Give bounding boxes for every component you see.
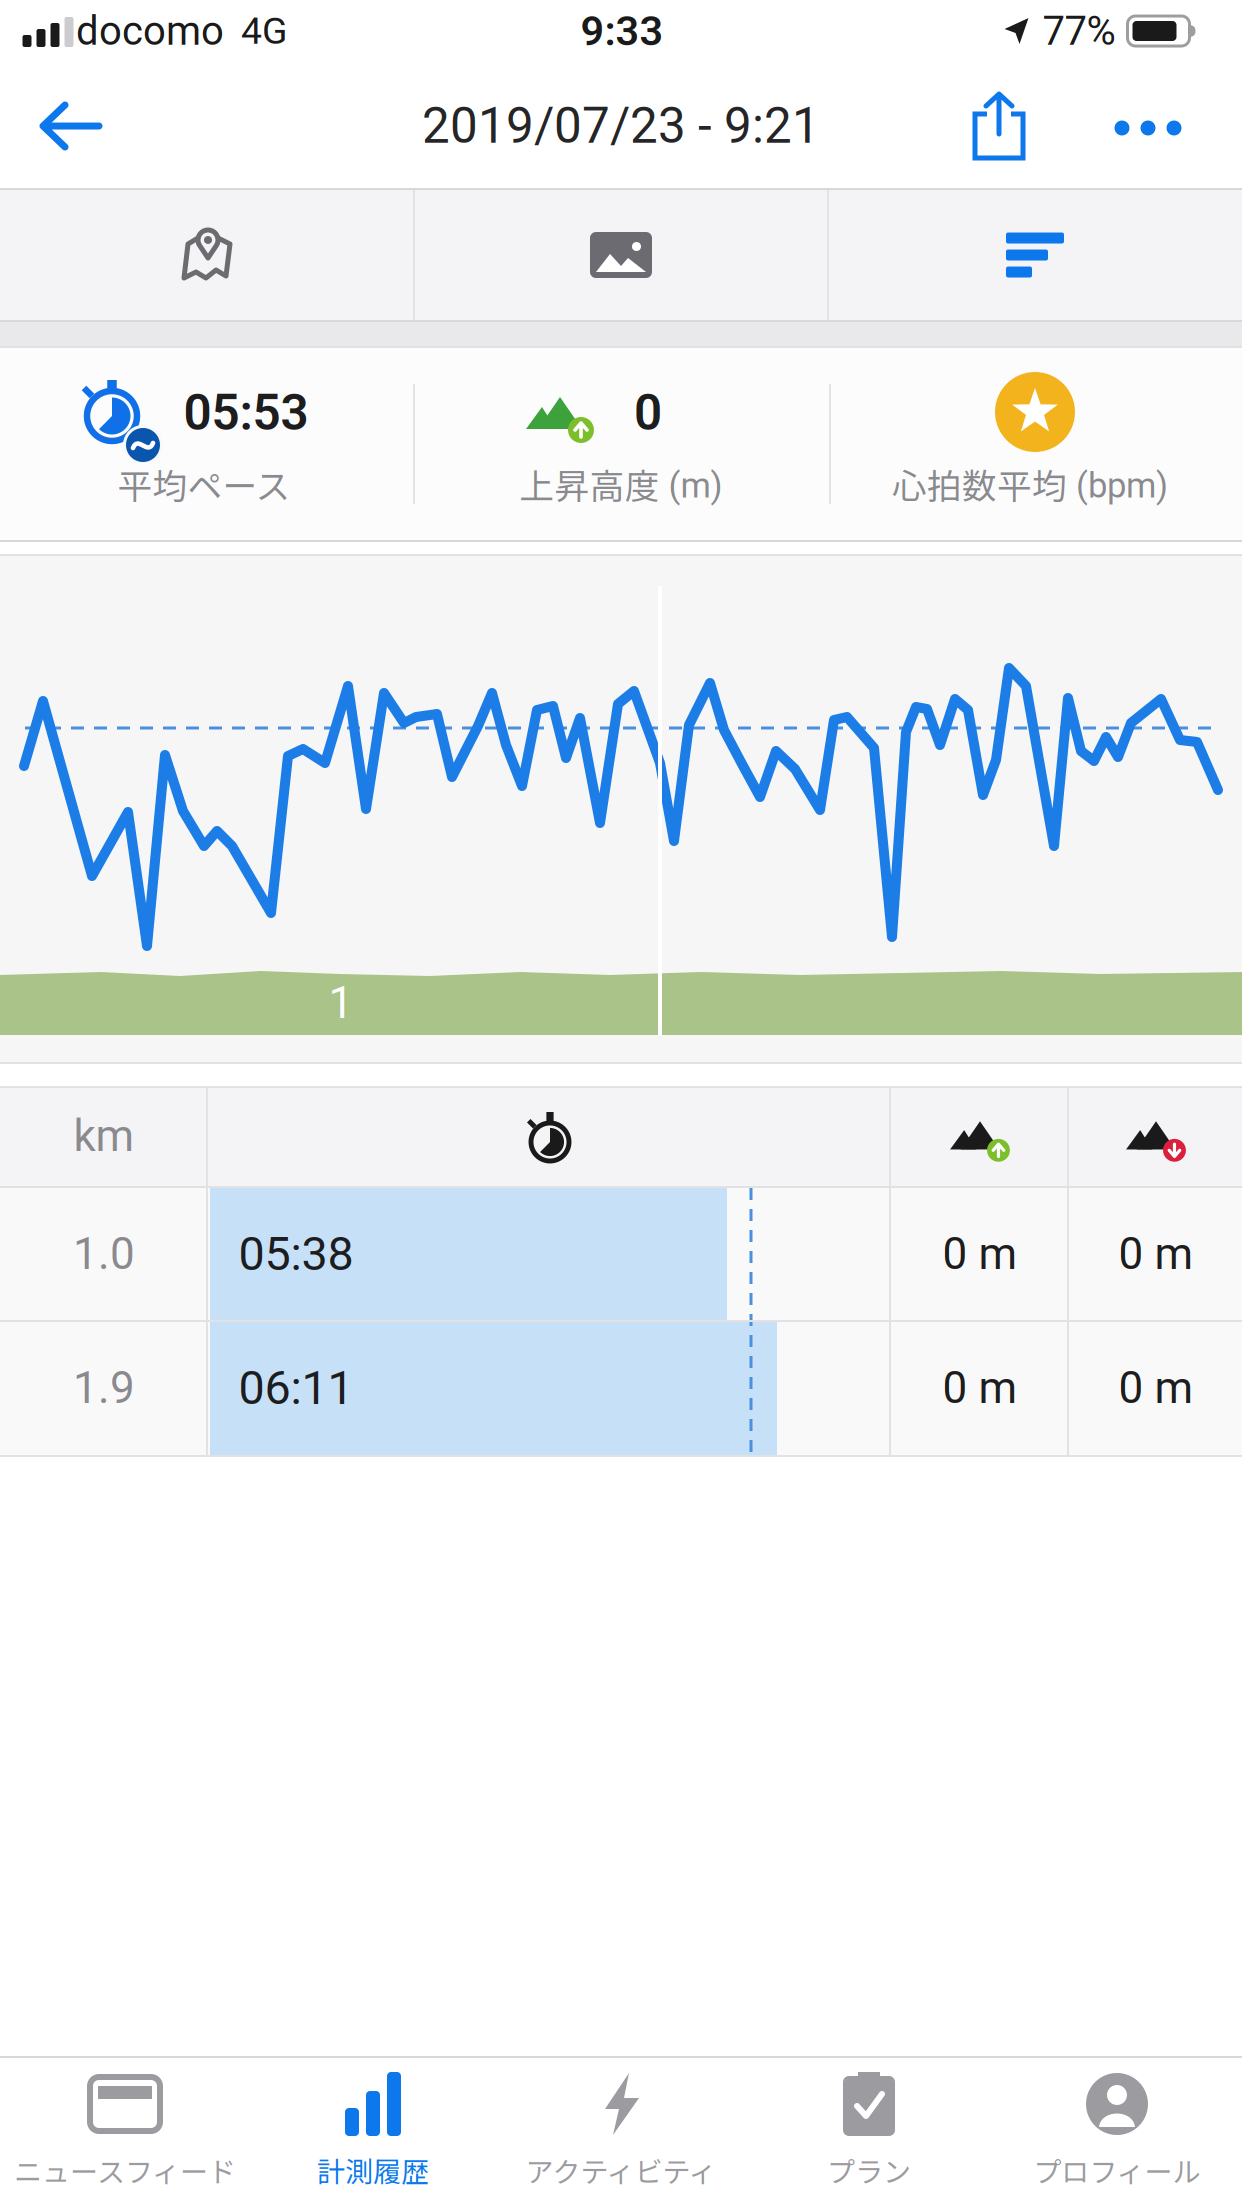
staticText: アクティビティ [525,2150,716,2190]
button[interactable]: ニュースフィード [1,2058,249,2208]
staticText: 2019/07/23 - 9:21 [422,98,820,154]
staticText: docomo [76,8,224,54]
staticText: 0 m [1118,1363,1193,1413]
staticText: プラン [827,2150,911,2190]
button[interactable]: プロフィール [993,2058,1241,2208]
staticText: 4G [241,10,287,52]
staticText: プロフィール [1033,2150,1200,2190]
staticText: km [73,1111,134,1161]
button[interactable]: アクティビティ [497,2058,745,2208]
staticText: 06:11 [238,1361,353,1415]
button[interactable]: Statistics [829,190,1241,320]
staticText: 心拍数平均 (bpm) [892,459,1168,508]
button[interactable]: Back [25,81,115,171]
staticText: 05:53 [183,385,308,441]
button[interactable]: Share [959,81,1039,171]
staticText: 0 m [942,1229,1017,1279]
staticText: 計測履歴 [317,2150,429,2190]
staticText: 1 [328,978,353,1028]
staticText: 上昇高度 (m) [519,459,722,508]
staticText: 1.0 [73,1229,135,1279]
staticText: 1.9 [73,1363,135,1413]
staticText: ニュースフィード [14,2150,236,2190]
staticText: 平均ペース [117,459,290,508]
staticText: 0 m [942,1363,1017,1413]
staticText: 0 m [1118,1229,1193,1279]
staticText: 77% [1042,8,1115,54]
button[interactable]: プラン [745,2058,993,2208]
button[interactable]: Photos [415,190,827,320]
staticText: 05:38 [238,1227,353,1281]
button[interactable]: 計測履歴 [249,2058,497,2208]
staticText: 9:33 [580,7,663,55]
button[interactable]: More [1103,98,1193,158]
button[interactable]: Map [1,190,413,320]
staticText: 0 [634,385,662,441]
